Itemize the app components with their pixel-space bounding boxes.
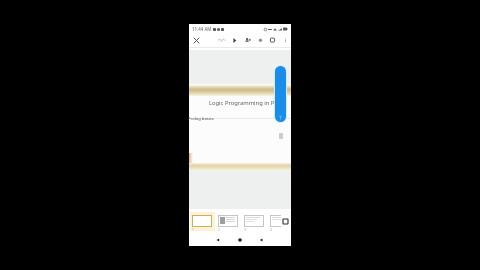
button[interactable] — [244, 215, 264, 227]
staticText: 4 — [270, 228, 272, 232]
button[interactable]: Add slide — [283, 219, 288, 224]
button[interactable]: Account — [254, 34, 267, 47]
staticText: Prolog basics — [188, 116, 214, 122]
staticText: 1 — [192, 228, 194, 232]
button[interactable]: Comments — [266, 34, 279, 47]
button[interactable] — [190, 212, 215, 231]
button[interactable]: Present — [228, 34, 241, 47]
button[interactable]: Close — [190, 34, 203, 47]
button[interactable]: Scroll — [275, 66, 286, 122]
staticText: 2 — [218, 228, 220, 232]
staticText: 3 — [244, 228, 246, 232]
button[interactable]: Undo and redo — [215, 34, 228, 47]
button[interactable] — [270, 215, 290, 227]
button[interactable] — [218, 215, 238, 227]
button[interactable]: Back — [213, 235, 223, 245]
button[interactable] — [192, 215, 212, 227]
staticText: Logic Programming in Prol — [209, 99, 282, 107]
button[interactable]: Share — [241, 34, 254, 47]
staticText: 11:44 AM — [192, 26, 212, 32]
button[interactable]: Home — [235, 235, 245, 245]
button[interactable]: Recent apps — [256, 235, 266, 245]
button[interactable]: More options — [279, 34, 292, 47]
